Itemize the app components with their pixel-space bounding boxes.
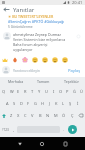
staticText: ?123 [2, 128, 9, 132]
button[interactable]: Tamam [36, 78, 51, 85]
button[interactable]: T [29, 89, 36, 94]
button[interactable]: Emoji [62, 57, 68, 63]
button[interactable]: I [50, 89, 57, 94]
staticText: F [27, 101, 30, 106]
staticText: V [31, 113, 34, 118]
button[interactable]: Recents [59, 138, 71, 150]
staticText: Z [10, 113, 13, 118]
button[interactable]: Back [14, 138, 26, 150]
button[interactable]: U [43, 89, 50, 94]
button[interactable]: N [44, 113, 52, 118]
staticText: Q [2, 89, 6, 94]
button[interactable]: K [53, 101, 60, 106]
button[interactable]: W [8, 89, 15, 94]
button[interactable]: Emoji [52, 57, 58, 63]
staticText: K [55, 101, 58, 106]
staticText: G [34, 101, 37, 106]
staticText: X [17, 113, 20, 118]
staticText: 20:41 [72, 0, 83, 5]
button[interactable]: S [11, 101, 18, 106]
staticText: I [53, 89, 55, 94]
staticText: uygulanıyor [13, 47, 33, 52]
button[interactable]: Z [8, 113, 15, 118]
button[interactable]: Q [0, 89, 8, 94]
button[interactable]: M [52, 113, 60, 118]
staticText: U [45, 89, 48, 94]
button[interactable]: Y [36, 89, 43, 94]
staticText: Ç [71, 113, 74, 118]
button[interactable]: Merhaba [7, 78, 25, 85]
staticText: M [54, 113, 58, 118]
button[interactable]: ?123 [0, 123, 11, 136]
button[interactable]: A [4, 101, 11, 106]
staticText: T [31, 89, 34, 94]
staticText: C [24, 113, 27, 118]
staticText: L [62, 101, 65, 106]
button[interactable]: X [15, 113, 22, 118]
staticText: H [41, 101, 44, 106]
button[interactable]: E [15, 89, 22, 94]
button[interactable]: Home [36, 138, 48, 150]
staticText: A [6, 101, 9, 106]
staticText: P [66, 89, 69, 94]
button[interactable]: F [25, 101, 32, 106]
button[interactable]: Emoji [42, 57, 48, 63]
button[interactable]: Ü [78, 89, 85, 94]
staticText: Ü [80, 89, 83, 94]
staticText: #SeninÇağrın #PKTÖ #Gökkuşağı [8, 19, 65, 24]
staticText: Merhaba [8, 79, 24, 84]
button[interactable]: Emoji [22, 57, 28, 63]
button[interactable]: V [29, 113, 36, 118]
button[interactable]: R [22, 89, 29, 94]
button[interactable]: Emoji [12, 57, 18, 63]
button[interactable]: Ç [68, 113, 76, 118]
button[interactable]: , [11, 123, 17, 136]
button[interactable]: More [74, 32, 82, 40]
button[interactable]: Ö [60, 113, 68, 118]
button[interactable]: H [39, 101, 46, 106]
button[interactable]: L [60, 101, 67, 106]
staticText: Yanıtlar [13, 6, 35, 14]
button[interactable]: Emoji [32, 57, 38, 63]
staticText: R [24, 89, 27, 94]
staticText: ☀ BU TWEETI RT'LEYENLER [8, 14, 54, 19]
staticText: Baha forum alışverişi [13, 42, 48, 47]
staticText: S [13, 101, 16, 106]
staticText: Y [38, 89, 41, 94]
staticText: O [59, 89, 63, 94]
button[interactable]: Paylaş [67, 67, 82, 74]
button[interactable]: Backspace [76, 109, 85, 122]
staticText: Verim Sistemin bize milyonlarca [13, 37, 66, 42]
staticText: W [10, 89, 14, 94]
button[interactable]: Send [68, 125, 77, 134]
button[interactable]: O [57, 89, 64, 94]
staticText: J [49, 101, 51, 106]
staticText: İ [77, 101, 79, 106]
button[interactable]: İ [74, 101, 81, 106]
button[interactable]: Ğ [71, 89, 78, 94]
staticText: . [63, 127, 65, 132]
button[interactable]: Ş [67, 101, 74, 106]
button[interactable]: D [18, 101, 25, 106]
button[interactable]: Emoji [2, 57, 8, 63]
button[interactable]: B [36, 113, 44, 118]
staticText: 5 Görüntülenme [8, 25, 33, 29]
staticText: , [13, 127, 15, 132]
staticText: Teşekkür [64, 79, 80, 84]
button[interactable]: J [46, 101, 53, 106]
button[interactable]: Shift [0, 109, 8, 122]
staticText: E [17, 89, 20, 94]
staticText: D [20, 101, 23, 106]
button[interactable]: C [22, 113, 29, 118]
button[interactable]: P [64, 89, 71, 94]
button[interactable]: Back [0, 5, 13, 14]
staticText: ahmetyilmaz Zeynep Durmaz [13, 32, 61, 37]
button[interactable]: Teşekkür [63, 78, 81, 85]
staticText: B [39, 113, 42, 118]
staticText: Ğ [73, 89, 76, 94]
staticText: N [46, 113, 50, 118]
staticText: Yanıtınızı ekleyin [13, 68, 41, 73]
button[interactable]: G [32, 101, 39, 106]
